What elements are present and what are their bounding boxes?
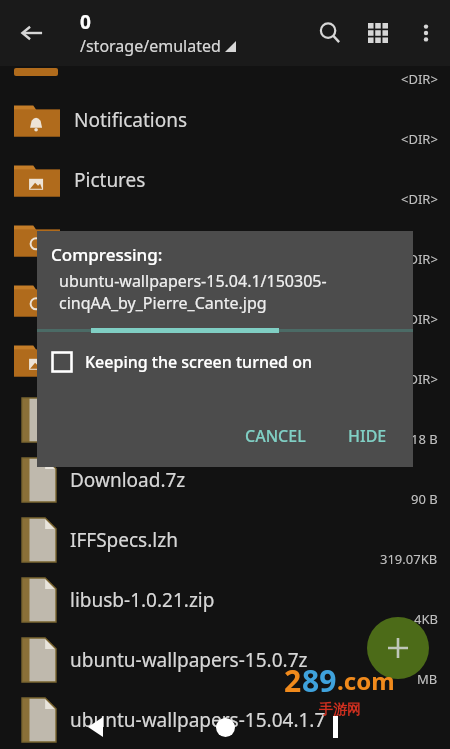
staticText: <DIR> xyxy=(401,130,438,148)
staticText: /storage/emulated xyxy=(80,35,221,57)
button[interactable]: Notifications xyxy=(0,90,450,150)
staticText: 18 B xyxy=(411,430,438,448)
staticText: CANCEL xyxy=(245,425,306,447)
button[interactable]: Home xyxy=(205,707,245,747)
staticText: <DIR> xyxy=(401,190,438,208)
button[interactable]: Recents xyxy=(315,707,355,747)
staticText: 90 B xyxy=(411,490,438,508)
staticText: 319.07KB xyxy=(380,550,438,568)
button[interactable]: 0 xyxy=(80,9,236,57)
staticText: Pictures xyxy=(74,167,146,193)
staticText: Download.7z xyxy=(70,467,186,493)
button[interactable]: Back xyxy=(78,707,118,747)
staticText: HIDE xyxy=(348,425,387,447)
staticText: 2 xyxy=(284,660,302,701)
button[interactable]: Add xyxy=(367,617,429,679)
button[interactable]: libusb-1.0.21.zip xyxy=(0,570,450,630)
staticText: Compressing: xyxy=(51,243,163,266)
staticText: <DIR> xyxy=(401,70,438,88)
staticText: <DIR> xyxy=(401,310,438,328)
staticText: IFFSpecs.lzh xyxy=(70,527,178,553)
staticText: Keeping the screen turned on xyxy=(85,351,313,373)
button[interactable]: Movies xyxy=(0,330,450,390)
button[interactable]: ubuntu-wallpapers-15.04.1.7 xyxy=(0,690,450,749)
button[interactable]: Grid view xyxy=(354,9,402,57)
button[interactable]: ubuntu-wallpapers-15.0.7z xyxy=(0,630,450,690)
button[interactable]: IFFSpecs.lzh xyxy=(0,510,450,570)
staticText: 0 xyxy=(80,9,91,35)
staticText: ubuntu-wallpapers-15.0.7z xyxy=(70,647,308,673)
staticText: <DIR> xyxy=(401,370,438,388)
button[interactable]: HIDE xyxy=(338,419,397,453)
button[interactable]: CANCEL xyxy=(235,419,316,453)
button[interactable]: Podcasts xyxy=(0,210,450,270)
button[interactable]: Keeping the screen turned on xyxy=(51,351,313,373)
button[interactable]: Search xyxy=(306,9,354,57)
staticText: Podcasts xyxy=(74,227,154,253)
staticText: 4KB xyxy=(414,610,438,628)
button[interactable]: Download.7z xyxy=(0,450,450,510)
staticText: Notifications xyxy=(74,107,188,133)
staticText: .com xyxy=(337,664,395,697)
button[interactable]: Back xyxy=(8,9,56,57)
staticText: MB xyxy=(417,670,438,688)
staticText: Ringtones xyxy=(74,287,165,313)
staticText: 89 xyxy=(302,660,337,701)
staticText: <DIR> xyxy=(401,250,438,268)
button[interactable]: Pictures xyxy=(0,150,450,210)
staticText: ubuntu-wallpapers-15.04.1/150305-cinqAA_… xyxy=(59,270,403,314)
button[interactable]: Download.7z xyxy=(0,390,450,450)
staticText: libusb-1.0.21.zip xyxy=(70,587,215,613)
button[interactable]: More options xyxy=(402,9,450,57)
staticText: Movies xyxy=(74,347,137,373)
staticText: ubuntu-wallpapers-15.04.1.7 xyxy=(70,707,326,733)
button[interactable]: Ringtones xyxy=(0,270,450,330)
staticText: 手游网 xyxy=(319,701,361,719)
